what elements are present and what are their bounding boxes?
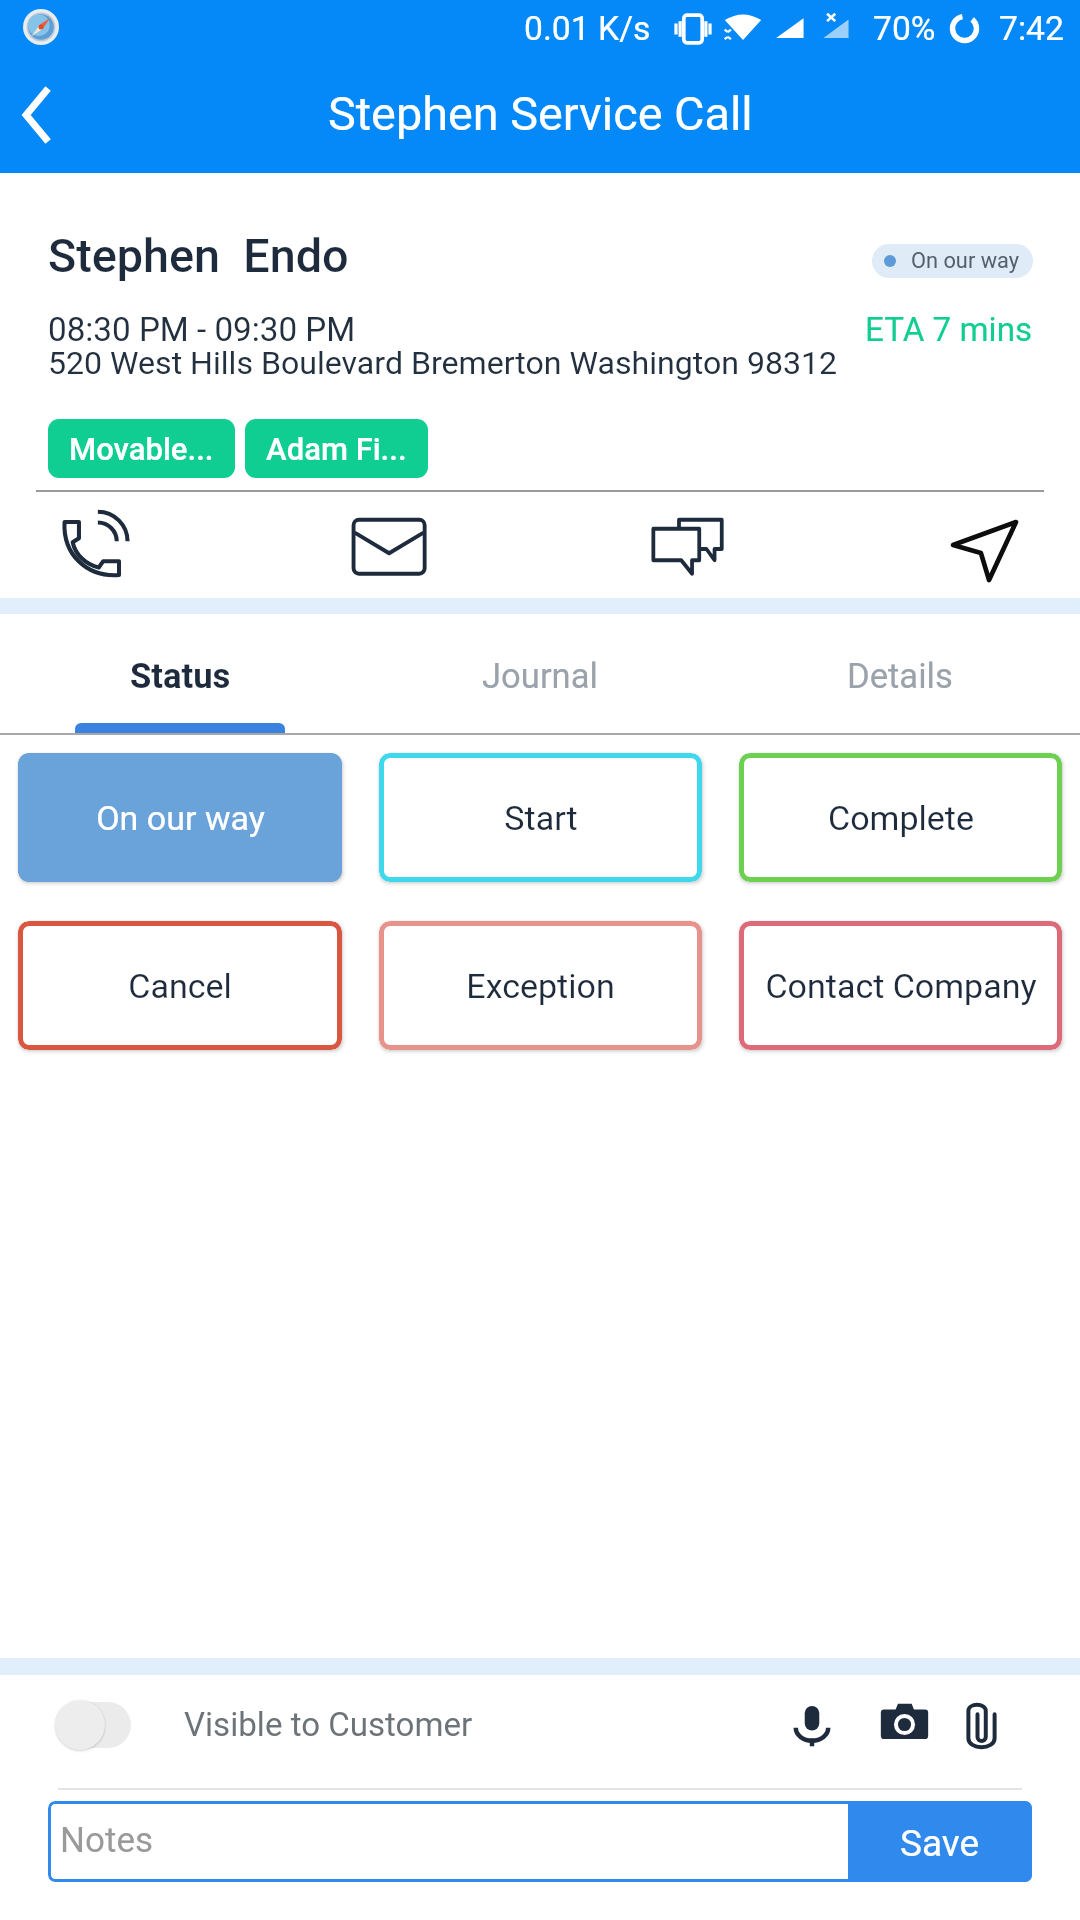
staticText: On our way	[96, 798, 265, 838]
staticText: Movable...	[69, 431, 214, 467]
button[interactable]: Save	[848, 1801, 1032, 1882]
staticText: Stephen Endo	[48, 229, 349, 284]
button[interactable]: Chat	[540, 492, 810, 598]
staticText: 08:30 PM - 09:30 PM	[48, 310, 356, 349]
staticText: Exception	[466, 966, 615, 1006]
staticText: ETA 7 mins	[865, 310, 1033, 349]
staticText: 7:42	[999, 9, 1064, 48]
staticText: 0.01 K/s	[524, 9, 651, 48]
button[interactable]: Cancel	[18, 921, 342, 1050]
button[interactable]: Details	[720, 614, 1080, 733]
staticText: Status	[130, 656, 231, 697]
button[interactable]: Take photo	[876, 1696, 933, 1753]
button[interactable]: Journal	[360, 614, 720, 733]
button[interactable]: Status	[0, 614, 360, 733]
staticText: On our way	[911, 248, 1020, 274]
staticText: Cancel	[128, 966, 232, 1006]
button[interactable]: Call	[0, 492, 270, 598]
button[interactable]: Contact Company	[739, 921, 1062, 1050]
staticText: Journal	[482, 656, 598, 697]
button[interactable]: Navigate	[810, 492, 1080, 598]
staticText: Notes	[60, 1820, 154, 1861]
staticText: Details	[847, 656, 953, 697]
staticText: Stephen Service Call	[328, 87, 753, 142]
button[interactable]: Complete	[739, 753, 1062, 882]
staticText: Start	[504, 798, 578, 838]
button[interactable]: On our way	[872, 244, 1033, 278]
staticText: 70%	[873, 9, 936, 48]
staticText: Visible to Customer	[184, 1705, 473, 1744]
button[interactable]: On our way	[18, 753, 342, 882]
button[interactable]: Exception	[379, 921, 702, 1050]
staticText: Save	[900, 1822, 980, 1865]
staticText: Adam Fi...	[266, 431, 407, 467]
button[interactable]: Record audio	[784, 1697, 840, 1753]
staticText: Complete	[828, 798, 974, 838]
staticText: 520 West Hills Boulevard Bremerton Washi…	[48, 344, 838, 382]
button[interactable]: Visible to customer toggle	[55, 1697, 131, 1753]
button[interactable]: Start	[379, 753, 702, 882]
staticText: Contact Company	[765, 966, 1037, 1006]
button[interactable]: Attach file	[953, 1696, 1010, 1753]
button[interactable]: Email	[270, 492, 540, 598]
button[interactable]: Adam Fi...	[245, 419, 428, 478]
button[interactable]: Movable...	[48, 419, 235, 478]
button[interactable]: Back	[0, 56, 90, 173]
